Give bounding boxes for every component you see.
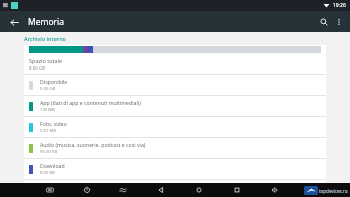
button[interactable]: Archivio interno: [24, 35, 66, 42]
staticText: 96.00 KB: [40, 149, 58, 155]
button[interactable]: App (dati di app e contenuti multimedial…: [24, 96, 326, 116]
staticText: 19:26: [333, 2, 346, 9]
staticText: 5.07 MB: [40, 128, 56, 134]
button[interactable]: More options: [332, 15, 346, 29]
button[interactable]: Home: [193, 184, 205, 196]
button[interactable]: Keyboard: [44, 184, 56, 196]
staticText: App (dati di app e contenuti multimedial…: [40, 99, 141, 106]
staticText: 8.00 GB: [29, 65, 46, 71]
button[interactable]: Recents: [231, 184, 243, 196]
button[interactable]: Back: [155, 184, 167, 196]
staticText: Download: [40, 162, 65, 169]
button[interactable]: Power: [81, 184, 93, 196]
button[interactable]: Search: [316, 14, 332, 30]
staticText: 5.00 GB: [40, 86, 56, 92]
button[interactable]: Foto, video: [24, 117, 326, 137]
button[interactable]: Download: [24, 159, 326, 179]
staticText: Spazio totale: [29, 57, 63, 64]
staticText: Audio (musica, suonerie, podcast e cosi …: [40, 141, 146, 148]
button[interactable]: Volume: [269, 184, 281, 196]
button[interactable]: Back: [6, 14, 22, 30]
staticText: Foto, video: [40, 120, 67, 127]
staticText: 8.00 KB: [40, 170, 55, 176]
staticText: Memoria: [28, 16, 65, 28]
staticText: topdevices.ru: [319, 188, 348, 194]
staticText: Disponibile: [40, 78, 68, 85]
button[interactable]: Disponibile: [24, 75, 326, 95]
button[interactable]: Gesture: [117, 184, 129, 196]
button[interactable]: Audio (musica, suonerie, podcast e cosi …: [24, 138, 326, 158]
staticText: 735 MB: [40, 107, 55, 113]
